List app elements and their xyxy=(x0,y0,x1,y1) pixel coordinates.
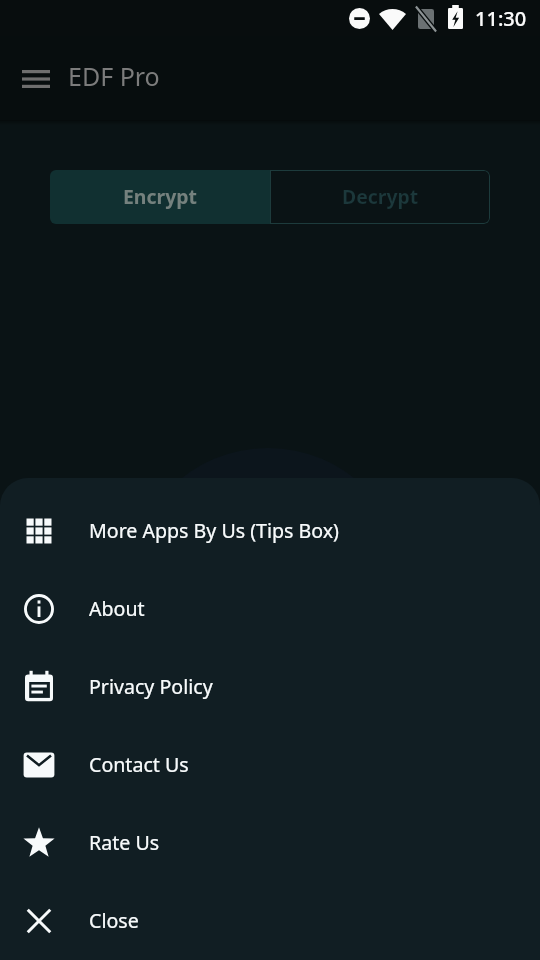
staticText: EDF Pro xyxy=(68,59,160,93)
staticText: Decrypt xyxy=(342,183,419,209)
button[interactable]: About xyxy=(0,570,540,648)
button[interactable]: Open navigation menu xyxy=(0,43,72,115)
staticText: Contact Us xyxy=(89,751,189,778)
staticText: Close xyxy=(89,907,139,934)
staticText: More Apps By Us (Tips Box) xyxy=(89,517,339,544)
button[interactable]: Close xyxy=(0,882,540,960)
button[interactable]: Encrypt xyxy=(50,170,270,224)
button[interactable]: Decrypt xyxy=(270,170,490,224)
staticText: Encrypt xyxy=(123,183,197,209)
button[interactable]: Privacy Policy xyxy=(0,648,540,726)
staticText: About xyxy=(89,595,145,622)
staticText: Privacy Policy xyxy=(89,673,213,700)
button[interactable]: Contact Us xyxy=(0,726,540,804)
button[interactable]: More Apps By Us (Tips Box) xyxy=(0,492,540,570)
staticText: Rate Us xyxy=(89,829,160,856)
staticText: 11:30 xyxy=(475,5,527,32)
button[interactable]: Rate Us xyxy=(0,804,540,882)
